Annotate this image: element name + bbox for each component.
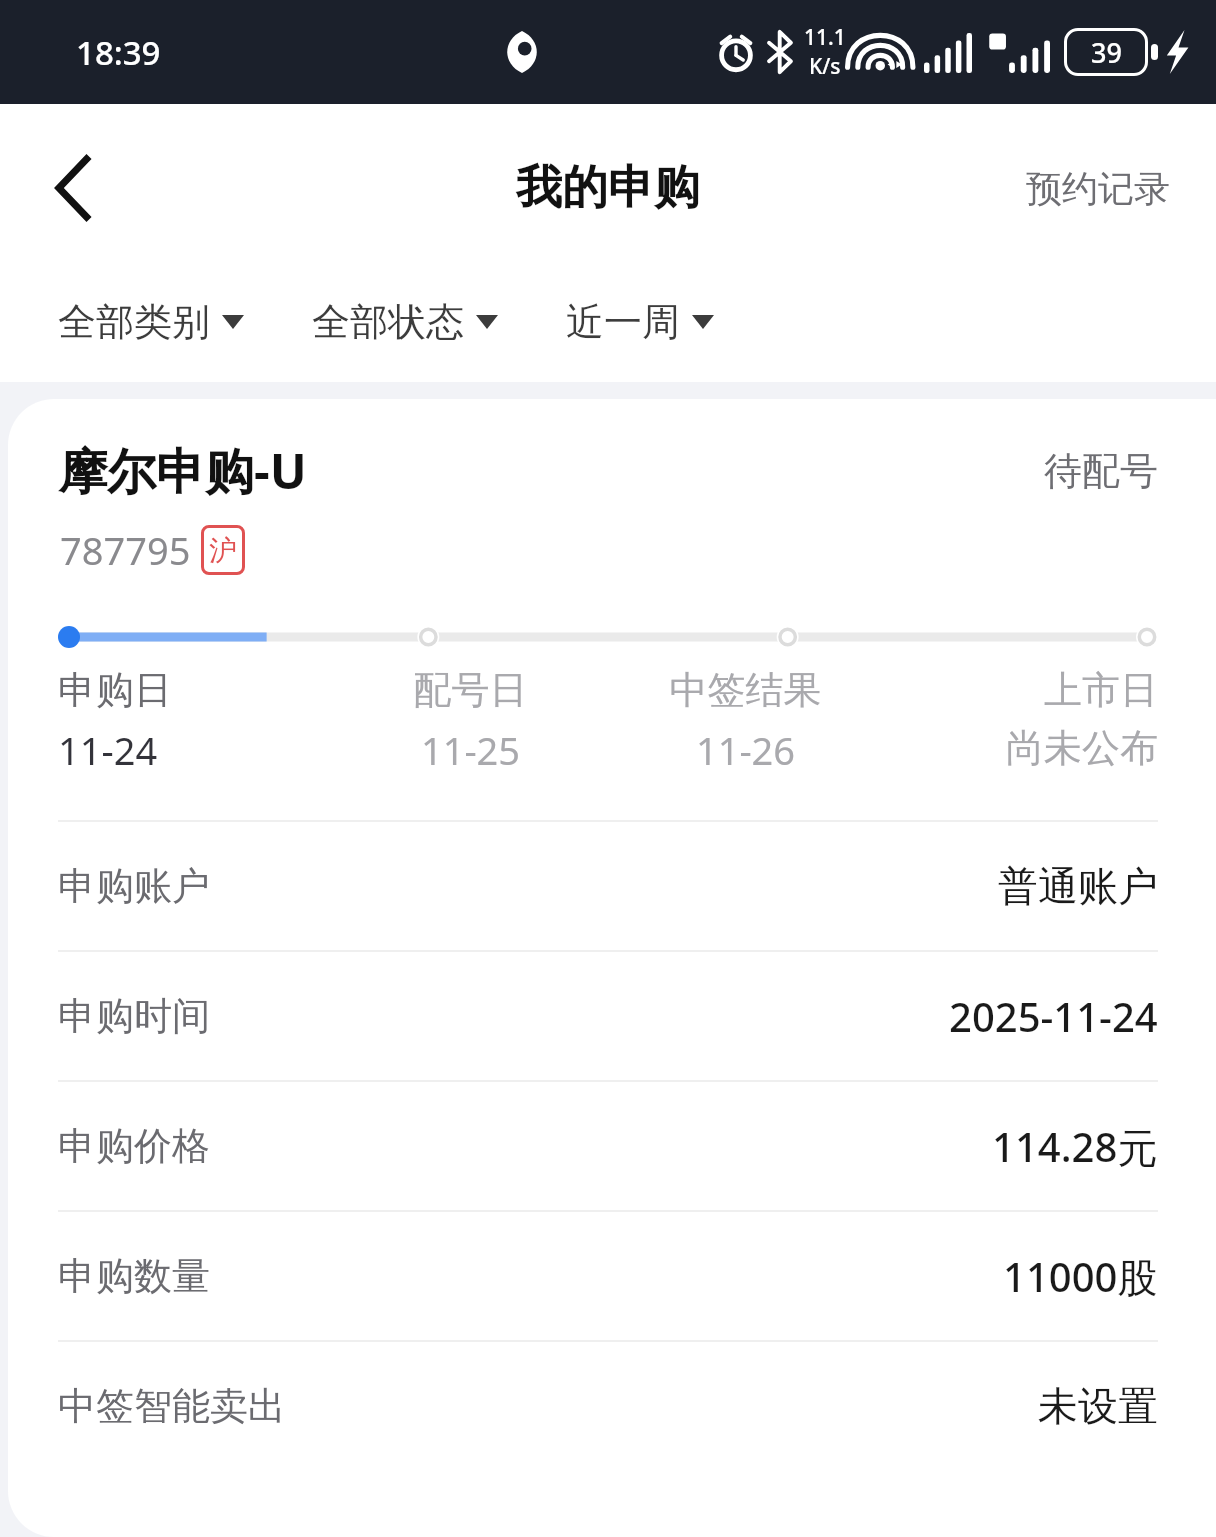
staticText: 我的申购 [516,159,700,217]
staticText: 上市日 [883,666,1158,714]
button[interactable]: 全部状态 [312,298,498,346]
staticText: K/s [809,52,841,81]
staticText: 配号日 [333,666,608,714]
staticText: 待配号 [1044,447,1158,495]
staticText: 全部状态 [312,298,464,346]
button[interactable]: 申购数量 [8,1212,1216,1340]
button[interactable]: 全部类别 [58,298,244,346]
staticText: 39 [1091,34,1122,71]
staticText: 11000股 [1003,1249,1158,1304]
staticText: 18:39 [76,30,161,75]
staticText: 预约记录 [1026,166,1170,211]
staticText: 未设置 [1038,1381,1158,1431]
staticText: 沪 [209,533,237,568]
staticText: 近一周 [566,298,680,346]
staticText: 申购时间 [58,992,210,1040]
staticText: 申购日 [58,666,333,714]
staticText: 114.28元 [992,1119,1158,1174]
staticText: 申购账户 [58,862,210,910]
staticText: 11-24 [58,724,333,776]
button[interactable]: Back [28,142,120,234]
staticText: 摩尔申购-U [58,437,307,504]
staticText: 尚未公布 [883,724,1158,772]
staticText: 2025-11-24 [949,989,1158,1043]
staticText: 普通账户 [998,861,1158,911]
staticText: 申购数量 [58,1252,210,1300]
staticText: 中签结果 [608,666,883,714]
staticText: 11-25 [333,724,608,776]
button[interactable]: 申购时间 [8,952,1216,1080]
staticText: 全部类别 [58,298,210,346]
button[interactable]: 近一周 [566,298,714,346]
button[interactable]: 中签智能卖出 [8,1342,1216,1470]
staticText: 11-26 [608,724,883,776]
button[interactable]: 申购价格 [8,1082,1216,1210]
button[interactable]: 申购账户 [8,822,1216,950]
staticText: 申购价格 [58,1122,210,1170]
staticText: 787795 [60,524,191,576]
staticText: 中签智能卖出 [58,1382,286,1430]
button[interactable]: 预约记录 [1026,166,1170,211]
staticText: 11.1 [804,23,846,52]
